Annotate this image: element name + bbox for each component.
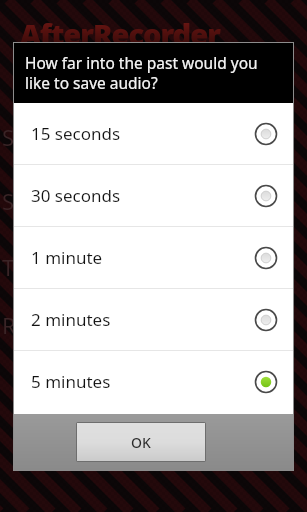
button[interactable]: OK	[77, 423, 205, 461]
staticText: 15 seconds	[31, 122, 254, 145]
staticText: 5 minutes	[31, 370, 254, 393]
staticText: S	[2, 186, 15, 216]
staticText: S	[2, 122, 15, 152]
button[interactable]: 1 minute	[14, 227, 293, 288]
staticText: 2 minutes	[31, 308, 254, 331]
staticText: 1 minute	[31, 246, 254, 269]
button[interactable]: 15 seconds	[14, 103, 293, 164]
staticText: R	[2, 310, 16, 340]
staticText: How far into the past would you like to …	[25, 52, 281, 94]
button[interactable]: 5 minutes	[14, 351, 293, 412]
staticText: AfterRecorder	[20, 14, 220, 53]
staticText: T	[2, 252, 15, 282]
staticText: OK	[131, 433, 151, 452]
button[interactable]: 30 seconds	[14, 165, 293, 226]
staticText: 30 seconds	[31, 184, 254, 207]
button[interactable]: 2 minutes	[14, 289, 293, 350]
